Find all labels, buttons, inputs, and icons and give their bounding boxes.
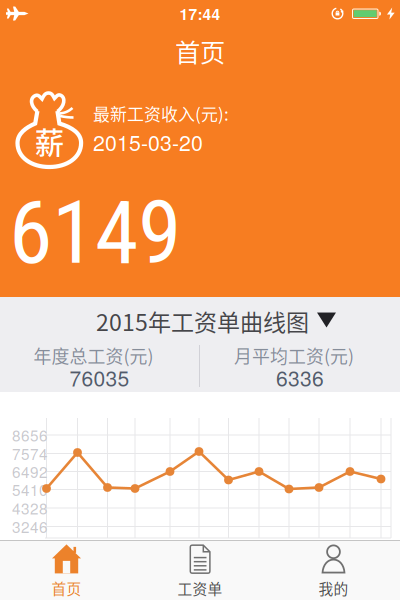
staticText: 76035 bbox=[69, 362, 129, 393]
staticText: 月平均工资(元) bbox=[234, 342, 354, 368]
staticText: 2015年工资单曲线图 bbox=[96, 304, 309, 338]
staticText: 年度总工资(元) bbox=[33, 342, 153, 368]
staticText: 17:44 bbox=[179, 2, 220, 25]
staticText: 6336 bbox=[276, 362, 324, 393]
staticText: 4328 bbox=[12, 497, 48, 519]
button[interactable]: 2015年工资单曲线图 bbox=[0, 297, 400, 343]
staticText: 7574 bbox=[12, 442, 48, 464]
staticText: 工资单 bbox=[177, 577, 222, 599]
staticText: 2015-03-20 bbox=[93, 126, 203, 157]
staticText: 3246 bbox=[12, 515, 48, 537]
button[interactable]: 我的 bbox=[267, 543, 400, 599]
staticText: 6492 bbox=[12, 460, 48, 482]
button[interactable]: 工资单 bbox=[133, 543, 267, 599]
staticText: 6149 bbox=[9, 181, 181, 284]
staticText: 首页 bbox=[175, 33, 225, 69]
staticText: 首页 bbox=[51, 577, 81, 599]
staticText: 薪 bbox=[35, 120, 64, 162]
button[interactable]: 首页 bbox=[0, 543, 133, 599]
staticText: 我的 bbox=[318, 577, 348, 599]
staticText: 8656 bbox=[12, 424, 48, 446]
staticText: 最新工资收入(元): bbox=[93, 101, 229, 125]
staticText: 5410 bbox=[12, 478, 48, 500]
